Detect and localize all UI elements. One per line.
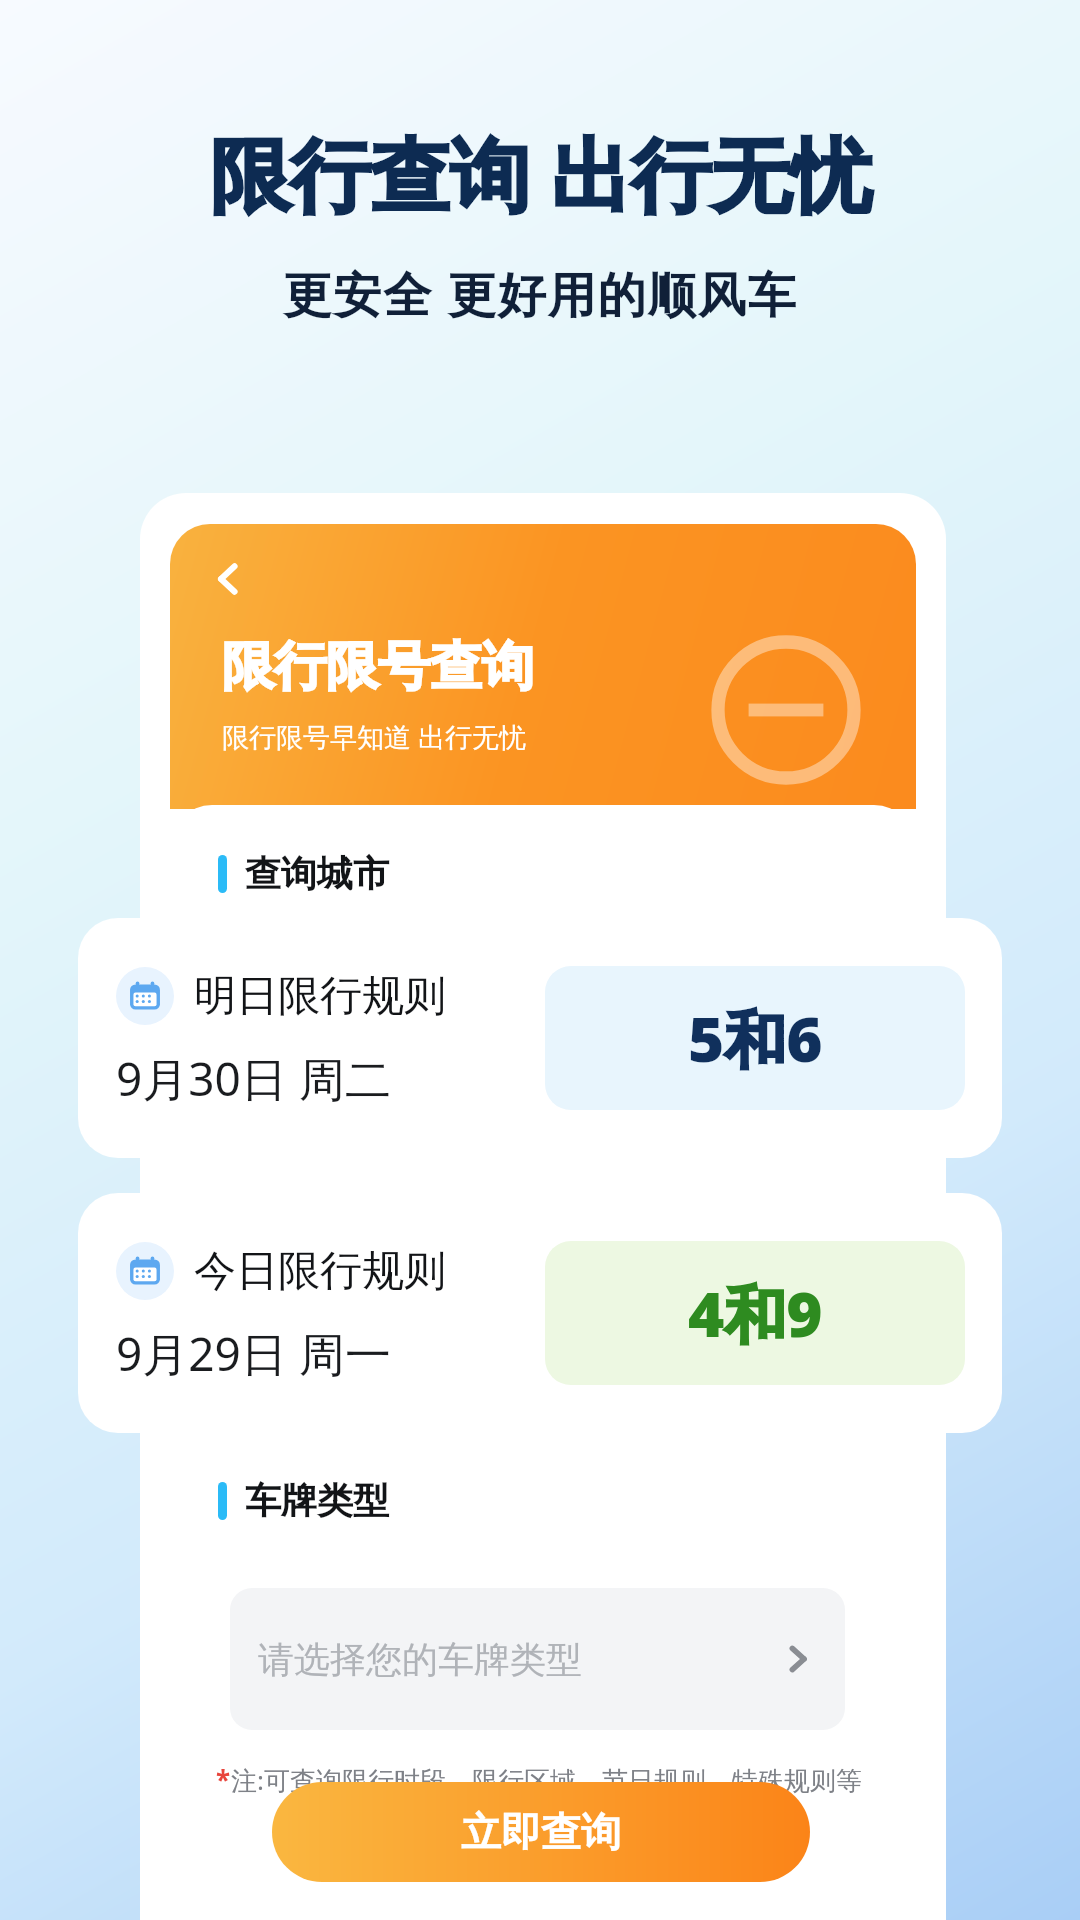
button[interactable]: Back [196,546,262,612]
staticText: 明日限行规则 [194,970,446,1023]
staticText: 车牌类型 [245,1478,389,1523]
staticText: 9月29日 周一 [116,1322,391,1385]
staticText: * [216,1762,231,1797]
staticText: 更安全 更好用的顺风车 [283,261,798,327]
staticText: 请选择您的车牌类型 [258,1637,582,1682]
button[interactable]: 立即查询 [272,1782,810,1882]
staticText: 立即查询 [461,1807,621,1857]
staticText: 4和9 [688,1271,823,1356]
staticText: 限行限号早知道 出行无忧 [222,718,527,755]
staticText: 今日限行规则 [194,1245,446,1298]
staticText: 9月30日 周二 [116,1047,391,1110]
staticText: 注:可查询限行时段、限行区域、节日规则、特殊规则等 [231,1762,862,1798]
staticText: 限行限号查询 [222,634,534,700]
button[interactable]: 今日限行规则 [78,1193,1002,1433]
staticText: 查询城市 [245,851,389,896]
staticText: 5和6 [688,996,823,1081]
button[interactable]: 明日限行规则 [78,918,1002,1158]
button[interactable]: 请选择您的车牌类型 [230,1588,845,1730]
staticText: 限行查询 出行无忧 [210,118,871,227]
